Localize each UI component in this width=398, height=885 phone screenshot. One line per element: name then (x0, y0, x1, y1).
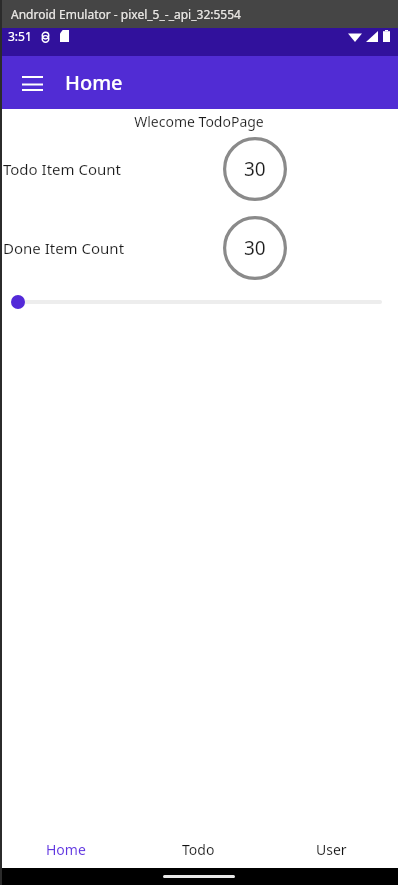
staticText: Android Emulator - pixel_5_-_api_32:5554 (11, 6, 241, 22)
staticText: Home (46, 840, 86, 859)
button[interactable]: User (265, 830, 398, 868)
staticText: 30 (244, 235, 266, 261)
staticText: Home (65, 69, 123, 96)
button[interactable]: Todo Item Count (0, 135, 398, 203)
staticText: User (316, 840, 347, 859)
button[interactable]: Done Item Count (0, 214, 398, 282)
staticText: 3:51 (8, 28, 32, 44)
staticText: Todo (182, 840, 215, 859)
staticText: Todo Item Count (3, 159, 121, 179)
staticText: 30 (244, 156, 266, 182)
button[interactable]: Open navigation menu (10, 61, 54, 105)
button[interactable]: Todo (132, 830, 265, 868)
staticText: Done Item Count (3, 238, 125, 258)
staticText: Wlecome TodoPage (0, 112, 398, 131)
button[interactable]: Home (0, 830, 132, 868)
button[interactable]: Progress slider (0, 290, 398, 314)
